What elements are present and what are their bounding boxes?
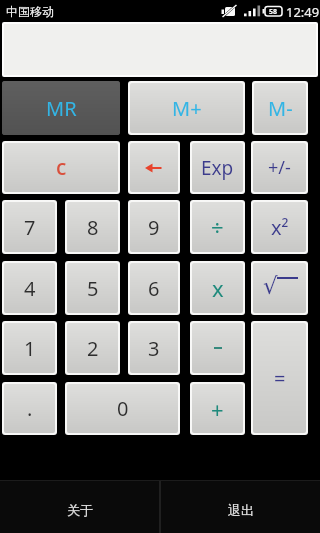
button[interactable]: 2 <box>65 321 120 375</box>
staticText: √ <box>263 273 278 300</box>
staticText: +/- <box>268 155 291 180</box>
button[interactable]: 4 <box>2 261 57 315</box>
staticText: 退出 <box>228 502 254 518</box>
staticText: ÷ <box>211 212 224 242</box>
button[interactable]: 0 <box>65 382 180 435</box>
button[interactable]: √ <box>251 261 308 315</box>
staticText: 2 <box>87 335 99 362</box>
staticText: 8 <box>87 214 99 241</box>
button[interactable]: ÷ <box>190 200 245 254</box>
staticText: + <box>211 394 224 424</box>
staticText: 9 <box>148 214 160 241</box>
button[interactable]: 9 <box>128 200 180 254</box>
button[interactable]: + <box>190 382 245 435</box>
button[interactable]: 退出 <box>161 481 320 533</box>
staticText: 58 <box>269 7 278 17</box>
staticText: 4 <box>24 275 36 302</box>
staticText: x <box>212 273 224 303</box>
staticText: c <box>56 153 67 182</box>
staticText: 7 <box>24 214 36 241</box>
staticText: 中国移动 <box>6 4 54 19</box>
button[interactable] <box>128 141 180 194</box>
staticText: 5 <box>87 275 99 302</box>
button[interactable]: 8 <box>65 200 120 254</box>
staticText: 6 <box>148 275 160 302</box>
staticText: = <box>274 365 286 392</box>
staticText: M- <box>268 95 293 122</box>
button[interactable]: c <box>2 141 120 194</box>
staticText: . <box>27 395 33 422</box>
button[interactable]: 3 <box>128 321 180 375</box>
staticText: M+ <box>172 95 202 122</box>
staticText: x² <box>271 214 289 241</box>
button[interactable]: M+ <box>128 81 245 135</box>
button[interactable]: . <box>2 382 57 435</box>
staticText: 12:49 <box>286 3 320 21</box>
staticText: Exp <box>201 155 234 181</box>
button[interactable]: = <box>251 321 308 435</box>
button[interactable]: +/- <box>251 141 308 194</box>
button[interactable]: M- <box>252 81 308 135</box>
button[interactable]: 7 <box>2 200 57 254</box>
staticText: 0 <box>117 395 129 422</box>
button[interactable]: 关于 <box>0 481 159 533</box>
button[interactable]: 5 <box>65 261 120 315</box>
button[interactable]: MR <box>2 81 120 135</box>
staticText: 关于 <box>67 502 93 518</box>
button[interactable]: 1 <box>2 321 57 375</box>
button[interactable]: 6 <box>128 261 180 315</box>
button[interactable]: x² <box>251 200 308 254</box>
button[interactable]: Exp <box>190 141 245 194</box>
staticText: 1 <box>24 335 36 362</box>
staticText: MR <box>46 95 77 122</box>
staticText: 3 <box>148 335 160 362</box>
button[interactable] <box>190 321 245 375</box>
button[interactable]: x <box>190 261 245 315</box>
